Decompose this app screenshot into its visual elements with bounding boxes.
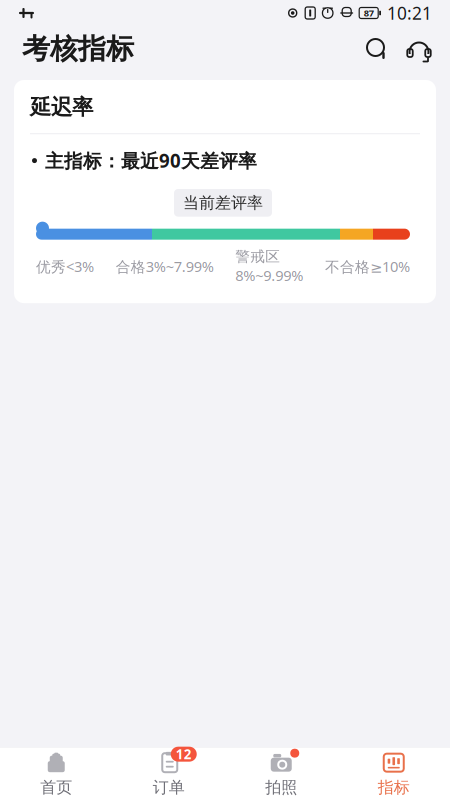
staticText: 不合格≥10% <box>325 257 410 276</box>
staticText: 考核指标 <box>22 32 134 66</box>
staticText: 指标 <box>378 778 410 797</box>
staticText: 12 <box>176 745 192 763</box>
staticText: 主指标：最近90天差评率 <box>45 148 257 173</box>
button[interactable]: 12 <box>112 748 225 800</box>
staticText: 10:21 <box>387 1 432 24</box>
staticText: 拍照 <box>265 778 297 797</box>
button[interactable]: 客服 <box>398 28 440 70</box>
staticText: 订单 <box>153 778 185 797</box>
staticText: 延迟率 <box>30 94 93 120</box>
button[interactable]: 首页 <box>0 748 112 800</box>
staticText: 警戒区8%~9.99% <box>235 248 303 285</box>
button[interactable]: 拍照 <box>225 748 337 800</box>
staticText: 优秀<3% <box>36 257 94 276</box>
staticText: 合格3%~7.99% <box>116 257 214 276</box>
button[interactable]: 指标 <box>337 748 450 800</box>
staticText: 87 <box>364 7 374 19</box>
staticText: 当前差评率 <box>183 193 263 213</box>
button[interactable]: 搜索 <box>356 28 398 70</box>
staticText: 首页 <box>40 778 72 797</box>
